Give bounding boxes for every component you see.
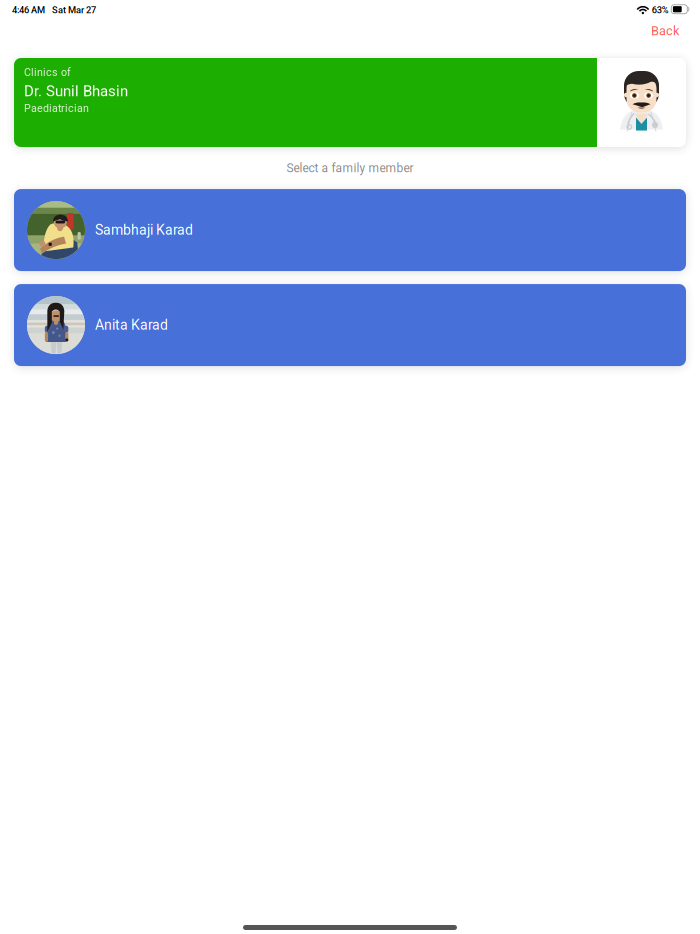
staticText: 4:46 AM <box>12 4 45 15</box>
staticText: Anita Karad <box>95 317 168 333</box>
button[interactable]: Back <box>637 19 700 43</box>
staticText: Clinics of <box>24 66 71 78</box>
staticText: Sat Mar 27 <box>52 4 96 15</box>
staticText: 63% <box>652 4 669 15</box>
button[interactable]: Sambhaji Karad <box>14 189 686 271</box>
staticText: Dr. Sunil Bhasin <box>24 82 128 100</box>
staticText: Select a family member <box>286 161 413 175</box>
button[interactable]: Anita Karad <box>14 284 686 366</box>
staticText: Back <box>651 24 679 38</box>
staticText: Paediatrician <box>24 102 89 114</box>
staticText: Sambhaji Karad <box>95 222 193 238</box>
